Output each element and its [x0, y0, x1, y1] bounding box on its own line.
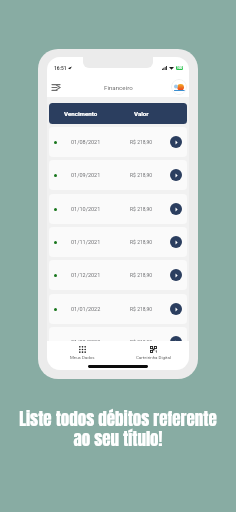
staticText: Valor	[134, 110, 149, 117]
staticText: R$ 218,90	[130, 272, 153, 278]
staticText: R$ 218,90	[130, 239, 153, 245]
button[interactable]: Ver detalhes	[170, 169, 182, 181]
button[interactable]: Meus Dados	[47, 344, 118, 360]
staticText: Carteirinha Digital	[136, 355, 171, 360]
staticText: Meus Dados	[70, 355, 95, 360]
button[interactable]: 01/11/2021	[49, 227, 187, 257]
staticText: R$ 218,90	[130, 172, 153, 178]
staticText: 100	[177, 66, 183, 70]
button[interactable]: 01/08/2021	[49, 127, 187, 157]
staticText: 01/10/2021	[71, 206, 101, 212]
staticText: 16:51	[54, 65, 67, 71]
staticText: 01/11/2021	[71, 239, 101, 245]
button[interactable]: 01/01/2022	[49, 294, 187, 324]
button[interactable]: Ver detalhes	[170, 269, 182, 281]
button[interactable]: Carteirinha Digital	[118, 344, 189, 360]
staticText: 01/02/2022	[71, 339, 101, 342]
staticText: 01/09/2021	[71, 172, 101, 178]
staticText: 01/08/2021	[71, 139, 101, 145]
staticText: R$ 218,90	[130, 339, 153, 342]
staticText: R$ 218,90	[130, 306, 153, 312]
button[interactable]: Perfil	[171, 79, 187, 95]
staticText: R$ 218,90	[130, 206, 153, 212]
button[interactable]: 01/09/2021	[49, 160, 187, 190]
button[interactable]: Ver detalhes	[170, 336, 182, 342]
button[interactable]: Ver detalhes	[170, 203, 182, 215]
button[interactable]: 01/02/2022	[49, 327, 187, 342]
button[interactable]: Abrir menu	[48, 79, 64, 95]
button[interactable]: Ver detalhes	[170, 136, 182, 148]
button[interactable]: Ver detalhes	[170, 303, 182, 315]
staticText: Vencimento	[64, 110, 98, 117]
staticText: Liste todos débitos referente ao seu tít…	[0, 406, 236, 451]
button[interactable]: 01/10/2021	[49, 194, 187, 224]
button[interactable]: Ver detalhes	[170, 236, 182, 248]
staticText: 01/12/2021	[71, 272, 101, 278]
button[interactable]: 01/12/2021	[49, 260, 187, 290]
staticText: Financeiro	[104, 84, 133, 91]
staticText: R$ 218,90	[130, 139, 153, 145]
staticText: 01/01/2022	[71, 306, 101, 312]
